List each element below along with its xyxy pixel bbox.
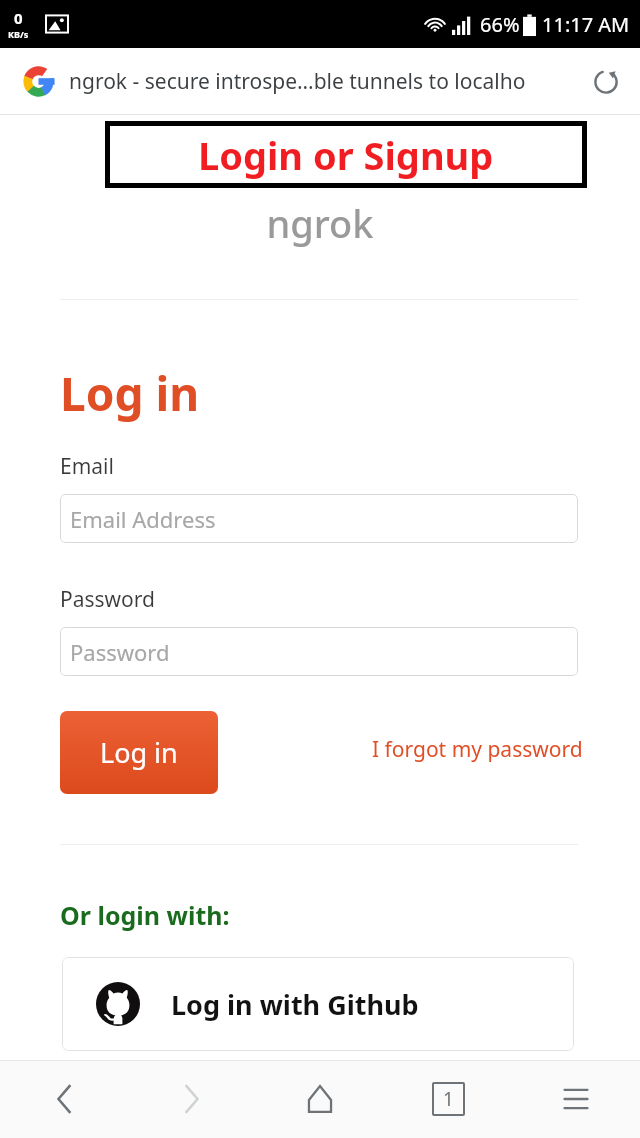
button[interactable]: Password (60, 627, 578, 676)
staticText: Or login with: (60, 898, 230, 932)
staticText: I forgot my password (372, 735, 583, 764)
staticText: Login or Signup (198, 129, 494, 181)
button[interactable]: Reload (584, 60, 628, 104)
button[interactable]: Login or Signup (105, 121, 587, 188)
button[interactable]: Log in (60, 711, 218, 794)
staticText: 1 (443, 1086, 454, 1112)
staticText: 66% (480, 11, 520, 38)
button[interactable]: Menu (512, 1060, 640, 1138)
button[interactable]: Home (256, 1060, 384, 1138)
staticText: Log in with Github (171, 986, 419, 1023)
staticText: 11:17 AM (542, 11, 630, 38)
staticText: Email (60, 452, 114, 481)
button[interactable]: I forgot my password (372, 735, 583, 764)
staticText: Password (70, 637, 170, 667)
staticText: Log in (60, 362, 200, 425)
staticText: KB/s (8, 28, 29, 40)
button[interactable]: Tabs (384, 1060, 512, 1138)
button[interactable]: Log in with Github (62, 957, 574, 1051)
staticText: Email Address (70, 504, 216, 534)
staticText: Password (60, 585, 155, 614)
staticText: 0 (14, 8, 23, 28)
button[interactable]: Back (0, 1060, 128, 1138)
button[interactable]: Forward (128, 1060, 256, 1138)
staticText: ngrok - secure introspe…ble tunnels to l… (69, 67, 526, 96)
button[interactable]: Email Address (60, 494, 578, 543)
staticText: ngrok (0, 197, 640, 249)
staticText: Log in (100, 734, 178, 771)
